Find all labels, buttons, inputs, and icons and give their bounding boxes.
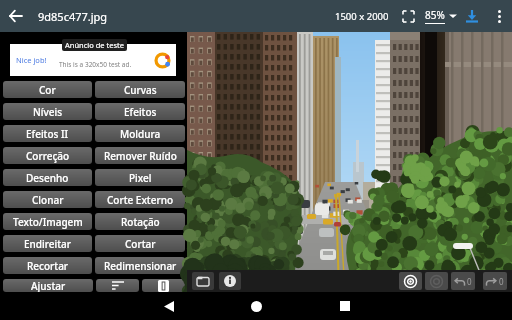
button[interactable] [219,272,241,290]
button[interactable]: Efeitos [95,103,185,120]
button[interactable] [96,279,139,292]
button[interactable]: Pixel [95,169,185,186]
button[interactable]: Corte Externo [95,191,185,208]
button[interactable]: 0 [451,272,475,290]
button[interactable] [0,0,32,32]
staticText: Texto/Imagem [13,215,83,229]
button[interactable]: Desenho [3,169,92,186]
staticText: Curvas [124,83,157,97]
staticText: Nice job! [16,55,47,65]
button[interactable]: Endireitar [3,235,92,252]
button[interactable] [164,301,174,312]
staticText: Moldura [120,127,161,141]
staticText: Recortar [27,259,69,273]
staticText: Endireitar [24,237,71,251]
staticText: Desenho [26,171,69,185]
button[interactable]: Recortar [3,257,92,274]
button[interactable]: Remover Ruído [95,147,185,164]
staticText: Redimensionar [104,259,177,273]
button[interactable]: 0 [483,272,507,290]
staticText: Remover Ruído [104,149,177,163]
staticText: Efeitos II [26,127,69,141]
staticText: Rotação [121,215,160,229]
button[interactable]: Níveis [3,103,92,120]
button[interactable] [192,272,214,290]
button[interactable]: Cor [3,81,92,98]
button[interactable]: Nice job! [10,44,176,76]
staticText: Efeitos [124,105,157,119]
staticText: 1500 x 2000 [335,10,389,23]
staticText: Cor [39,83,56,97]
button[interactable] [399,7,417,25]
staticText: Ajustar [31,279,66,292]
button[interactable]: 85% [425,8,457,24]
button[interactable]: Moldura [95,125,185,142]
button[interactable] [399,272,422,290]
staticText: 0 [467,276,472,287]
staticText: This is a 320x50 test ad. [59,60,132,69]
button[interactable]: Clonar [3,191,92,208]
staticText: Clonar [32,193,64,207]
staticText: 0 [499,276,504,287]
button[interactable]: Cortar [95,235,185,252]
button[interactable]: Ajustar [3,279,93,292]
button[interactable]: Curvas [95,81,185,98]
staticText: 9d85c477.jpg [38,9,108,24]
button[interactable] [251,301,262,312]
button[interactable]: Correção [3,147,92,164]
staticText: Corte Externo [107,193,174,207]
button[interactable]: Redimensionar [95,257,185,274]
button[interactable] [425,272,448,290]
button[interactable]: Texto/Imagem [3,213,92,230]
staticText: Níveis [33,105,63,119]
staticText: Anúncio de teste [65,40,124,50]
staticText: Pixel [129,171,152,185]
button[interactable] [488,5,510,27]
button[interactable] [462,6,482,26]
staticText: 85% [425,8,445,22]
staticText: Correção [26,149,70,163]
staticText: Cortar [125,237,156,251]
button[interactable]: Efeitos II [3,125,92,142]
button[interactable] [142,279,185,292]
button[interactable]: Rotação [95,213,185,230]
